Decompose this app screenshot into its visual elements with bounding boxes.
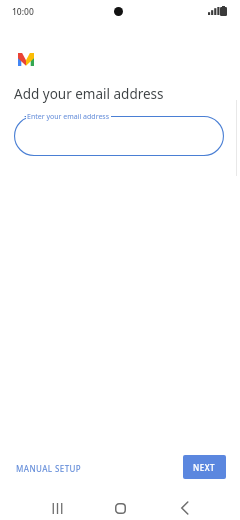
button[interactable]: Recent apps (41, 492, 73, 520)
button[interactable]: Back (169, 492, 201, 520)
button[interactable]: MANUAL SETUP (10, 456, 88, 480)
button[interactable]: NEXT (183, 455, 226, 479)
button[interactable]: Enter your email address (14, 116, 224, 156)
staticText: 10:00 (12, 6, 34, 18)
staticText: Enter your email address (27, 112, 110, 122)
staticText: NEXT (193, 462, 216, 473)
button[interactable]: Home (104, 492, 136, 520)
staticText: MANUAL SETUP (16, 463, 82, 474)
staticText: Add your email address (14, 85, 164, 103)
